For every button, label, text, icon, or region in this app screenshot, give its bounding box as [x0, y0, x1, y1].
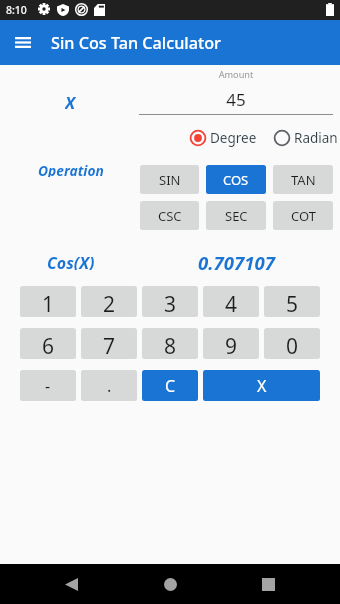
staticText: 4 — [225, 290, 238, 317]
button[interactable]: 8 — [142, 328, 198, 359]
button[interactable]: . — [81, 370, 137, 401]
button[interactable]: 1 — [20, 286, 76, 317]
staticText: Degree — [210, 129, 257, 147]
staticText: - — [45, 375, 51, 397]
button[interactable]: 2 — [81, 286, 137, 317]
button[interactable]: Home — [150, 564, 190, 604]
button[interactable]: Degree — [188, 128, 257, 148]
staticText: Sin Cos Tan Calculator — [51, 32, 221, 54]
button[interactable]: SEC — [206, 201, 266, 230]
staticText: 8:10 — [6, 3, 27, 17]
button[interactable]: - — [20, 370, 76, 401]
staticText: 7 — [103, 332, 116, 359]
button[interactable]: SIN — [140, 165, 199, 194]
button[interactable]: Open navigation menu — [7, 26, 39, 58]
staticText: Radian — [294, 129, 338, 147]
staticText: SIN — [159, 171, 181, 189]
button[interactable]: Back — [51, 564, 91, 604]
staticText: X — [257, 375, 267, 397]
button[interactable]: 0 — [264, 328, 320, 359]
button[interactable]: 3 — [142, 286, 198, 317]
staticText: Amount — [139, 68, 333, 81]
staticText: 6 — [42, 332, 55, 359]
staticText: COT — [291, 207, 316, 225]
button[interactable]: 5 — [264, 286, 320, 317]
staticText: CSC — [158, 207, 182, 225]
staticText: 8 — [164, 332, 177, 359]
button[interactable]: 4 — [203, 286, 259, 317]
staticText: 9 — [225, 332, 238, 359]
staticText: C — [165, 375, 176, 397]
button[interactable]: 6 — [20, 328, 76, 359]
button[interactable]: TAN — [273, 165, 333, 194]
button[interactable]: Recent apps — [248, 564, 288, 604]
staticText: 5 — [286, 290, 299, 317]
staticText: 3 — [164, 290, 177, 317]
staticText: COS — [223, 171, 249, 189]
button[interactable]: COT — [273, 201, 333, 230]
button[interactable]: X — [203, 370, 320, 401]
button[interactable]: COS — [206, 165, 266, 194]
button[interactable]: CSC — [140, 201, 199, 230]
button[interactable]: 9 — [203, 328, 259, 359]
staticText: 1 — [42, 290, 55, 317]
staticText: Cos(X) — [47, 252, 95, 270]
staticText: 45 — [139, 88, 333, 111]
staticText: TAN — [291, 171, 316, 189]
staticText: . — [107, 375, 112, 397]
staticText: SEC — [225, 207, 248, 225]
staticText: 2 — [103, 290, 116, 317]
button[interactable]: C — [142, 370, 198, 401]
staticText: Operation — [38, 161, 104, 177]
button[interactable]: Radian — [272, 128, 338, 148]
staticText: 0 — [286, 332, 299, 359]
button[interactable]: 7 — [81, 328, 137, 359]
staticText: 0.707107 — [198, 250, 276, 274]
staticText: X — [65, 91, 76, 111]
